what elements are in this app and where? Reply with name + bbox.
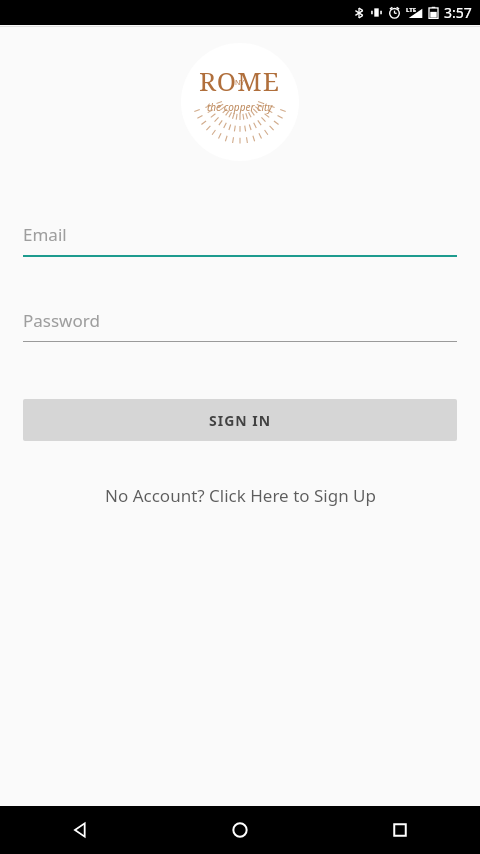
button[interactable]: Back <box>0 806 160 854</box>
staticText: No Account? Click Here to Sign Up <box>105 484 376 507</box>
staticText: SIGN IN <box>209 411 272 430</box>
staticText: ROME <box>199 63 281 98</box>
button[interactable]: No Account? Click Here to Sign Up <box>0 484 480 507</box>
button[interactable]: Password <box>23 309 457 342</box>
button[interactable]: Home <box>160 806 320 854</box>
staticText: NY <box>235 78 245 88</box>
staticText: the copper city <box>207 100 273 114</box>
staticText: Password <box>23 309 100 332</box>
button[interactable]: SIGN IN <box>23 399 457 441</box>
staticText: Email <box>23 223 67 246</box>
staticText: LTE <box>406 6 417 14</box>
button[interactable]: Email <box>23 223 457 257</box>
staticText: 3:57 <box>444 3 472 22</box>
button[interactable]: Recent apps <box>320 806 480 854</box>
